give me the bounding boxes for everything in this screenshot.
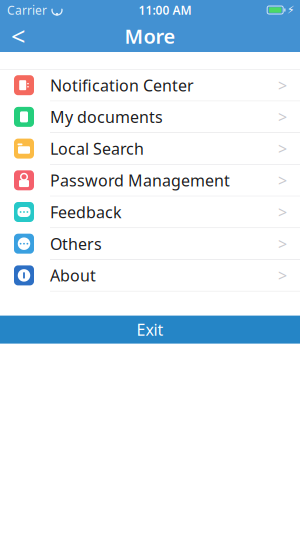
staticText: > bbox=[278, 265, 287, 286]
staticText: Feedback bbox=[50, 201, 122, 223]
staticText: About bbox=[50, 265, 96, 286]
staticText: > bbox=[278, 106, 287, 127]
button[interactable]: Back bbox=[0, 20, 36, 52]
staticText: 11:00 AM bbox=[139, 2, 192, 18]
button[interactable]: Exit bbox=[0, 316, 300, 344]
button[interactable]: Local Search bbox=[0, 133, 300, 165]
staticText: My documents bbox=[50, 106, 163, 127]
staticText: > bbox=[278, 75, 287, 96]
button[interactable]: Notification Center bbox=[0, 70, 300, 101]
button[interactable]: Feedback bbox=[0, 196, 300, 228]
staticText: < bbox=[11, 19, 25, 53]
staticText: > bbox=[278, 170, 287, 191]
button[interactable]: Password Management bbox=[0, 165, 300, 196]
button[interactable]: Others bbox=[0, 228, 300, 260]
staticText: Notification Center bbox=[50, 75, 194, 96]
staticText: > bbox=[278, 138, 287, 159]
button[interactable]: About bbox=[0, 260, 300, 292]
staticText: > bbox=[278, 201, 287, 223]
staticText: Password Management bbox=[50, 170, 230, 191]
staticText: Local Search bbox=[50, 138, 144, 159]
staticText: Exit bbox=[136, 319, 163, 340]
button[interactable]: My documents bbox=[0, 101, 300, 133]
staticText: Others bbox=[50, 233, 102, 254]
staticText: More bbox=[124, 23, 175, 49]
staticText: > bbox=[278, 233, 287, 254]
staticText: Carrier bbox=[7, 2, 47, 18]
staticText: ⚡︎ bbox=[287, 4, 294, 16]
